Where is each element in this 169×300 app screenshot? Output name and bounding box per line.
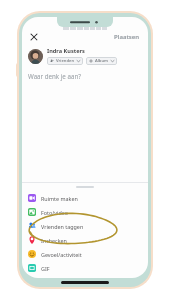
button[interactable]: Inchecken: [22, 233, 148, 247]
button[interactable]: Foto/video: [22, 205, 148, 219]
staticText: Foto/video: [41, 209, 69, 216]
button[interactable]: Album: [86, 57, 117, 65]
staticText: GIF: [41, 265, 50, 272]
button[interactable]: Gevoel/activiteit: [22, 247, 148, 261]
button[interactable]: Close: [28, 31, 39, 42]
staticText: Plaatsen: [114, 33, 140, 41]
staticText: Gevoel/activiteit: [41, 251, 82, 258]
staticText: Vrienden taggen: [41, 223, 84, 230]
staticText: Waar denk je aan?: [28, 72, 81, 80]
button[interactable]: GIF: [22, 261, 148, 275]
button[interactable]: Vrienden taggen: [22, 219, 148, 233]
staticText: Album: [95, 58, 109, 64]
button[interactable]: Plaatsen: [112, 32, 142, 42]
staticText: Ruimte maken: [41, 195, 78, 202]
staticText: Indra Kusters: [47, 47, 85, 55]
staticText: Vrienden: [56, 58, 75, 64]
button[interactable]: Vrienden: [47, 57, 83, 65]
button[interactable]: Profile photo: [28, 49, 43, 64]
staticText: Inchecken: [41, 237, 67, 244]
button[interactable]: Ruimte maken: [22, 191, 148, 205]
